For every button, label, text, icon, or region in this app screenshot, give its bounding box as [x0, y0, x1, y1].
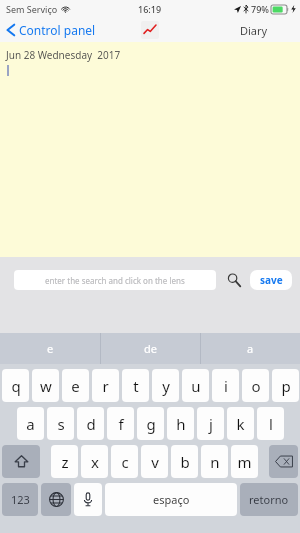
button[interactable]: espaço	[105, 483, 237, 516]
button[interactable]: r	[92, 369, 119, 402]
button[interactable]: Dictation	[74, 483, 102, 516]
staticText: z	[61, 452, 69, 472]
staticText: y	[162, 376, 170, 396]
staticText: Sem Serviço	[6, 3, 58, 15]
staticText: s	[57, 414, 65, 434]
button[interactable]: enter the search and click on the lens	[14, 270, 216, 290]
button[interactable]: h	[167, 407, 194, 440]
button[interactable]: g	[137, 407, 164, 440]
button[interactable]: Control panel	[0, 20, 104, 40]
staticText: a	[26, 414, 35, 434]
button[interactable]: u	[182, 369, 209, 402]
button[interactable]: w	[32, 369, 59, 402]
button[interactable]: Shift	[2, 445, 40, 478]
staticText: save	[260, 273, 283, 287]
staticText: t	[133, 376, 139, 396]
staticText: q	[11, 376, 21, 396]
button[interactable]: 123	[2, 483, 38, 516]
button[interactable]: Change keyboard language	[41, 483, 71, 516]
staticText: r	[102, 376, 109, 396]
button[interactable]: v	[141, 445, 168, 478]
staticText: enter the search and click on the lens	[45, 275, 185, 286]
staticText: w	[40, 376, 52, 396]
button[interactable]: o	[242, 369, 269, 402]
button[interactable]: Jun 28 Wednesday 2017	[0, 42, 300, 257]
staticText: k	[236, 414, 245, 434]
button[interactable]: c	[111, 445, 138, 478]
button[interactable]: retorno	[240, 483, 298, 516]
button[interactable]: k	[227, 407, 254, 440]
staticText: a	[247, 341, 254, 356]
button[interactable]: y	[152, 369, 179, 402]
button[interactable]: x	[81, 445, 108, 478]
button[interactable]: j	[197, 407, 224, 440]
staticText: i	[224, 376, 228, 396]
staticText: Control panel	[19, 22, 96, 38]
button[interactable]: a	[201, 333, 300, 364]
staticText: de	[144, 341, 157, 356]
staticText: 16:19	[138, 3, 162, 15]
button[interactable]: d	[77, 407, 104, 440]
staticText: espaço	[153, 492, 190, 507]
button[interactable]: s	[47, 407, 74, 440]
button[interactable]: f	[107, 407, 134, 440]
staticText: n	[210, 452, 220, 472]
staticText: l	[269, 414, 273, 434]
staticText: x	[91, 452, 99, 472]
staticText: u	[191, 376, 201, 396]
button[interactable]: e	[62, 369, 89, 402]
staticText: c	[121, 452, 129, 472]
staticText: Diary	[240, 23, 268, 38]
staticText: j	[209, 414, 213, 434]
button[interactable]: Search	[224, 270, 244, 290]
staticText: b	[180, 452, 190, 472]
button[interactable]: l	[257, 407, 284, 440]
button[interactable]: z	[51, 445, 78, 478]
button[interactable]: de	[101, 333, 200, 364]
staticText: d	[86, 414, 96, 434]
staticText: g	[146, 414, 156, 434]
button[interactable]: p	[272, 369, 299, 402]
button[interactable]: b	[171, 445, 198, 478]
staticText: 79%	[251, 3, 269, 15]
button[interactable]: t	[122, 369, 149, 402]
staticText: v	[151, 452, 159, 472]
button[interactable]: Backspace	[269, 445, 298, 478]
button[interactable]: e	[0, 333, 100, 364]
staticText: retorno	[249, 492, 289, 507]
button[interactable]: save	[250, 270, 292, 290]
button[interactable]: Chart	[141, 21, 159, 39]
staticText: h	[176, 414, 186, 434]
button[interactable]: q	[2, 369, 29, 402]
staticText: f	[118, 414, 124, 434]
staticText: e	[47, 341, 54, 356]
staticText: 123	[11, 492, 30, 507]
button[interactable]: m	[231, 445, 258, 478]
staticText: Jun 28 Wednesday 2017	[6, 48, 121, 62]
staticText: o	[251, 376, 261, 396]
staticText: e	[71, 376, 80, 396]
button[interactable]: a	[17, 407, 44, 440]
button[interactable]: n	[201, 445, 228, 478]
button[interactable]: i	[212, 369, 239, 402]
staticText: p	[281, 376, 291, 396]
staticText: m	[237, 452, 252, 472]
